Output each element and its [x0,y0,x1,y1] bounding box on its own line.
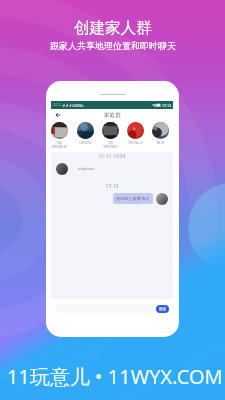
button[interactable]: 130 [98,122,122,149]
button[interactable]: 发送 [156,305,169,313]
staticText: 185 u7a [79,141,91,145]
button[interactable]: 130 Plus 3 [123,122,147,145]
staticText: 240B/s [72,103,84,108]
button[interactable]: 13# [47,122,71,149]
staticText: 创建家人群 [74,18,152,38]
staticText: 17:13 [51,183,173,190]
staticText: 跟家人共享地理位置和即时聊天 [50,40,176,51]
staticText: 36% 17:13 [154,103,172,108]
button[interactable]: Back [51,109,65,121]
button[interactable]: 185 u7a [73,122,97,145]
staticText: 11-11 15:24 [51,153,173,160]
staticText: 98 X1 [156,141,165,145]
staticText: 家庭群 [104,112,121,119]
button[interactable]: 98 X1 [148,122,172,145]
staticText: 11玩意儿 • 11WYX.COM [7,363,223,390]
staticText: 发送 [159,307,166,311]
staticText: 130 Plus 3 [127,141,143,145]
button[interactable]: Avatar [156,193,168,205]
staticText: 13# [56,141,62,145]
staticText: MIN AL30 [52,145,67,149]
staticText: 通知晚上聚餐地点 [116,196,150,201]
staticText: dajiahao [78,166,95,172]
staticText: SM1000H [103,145,118,149]
button[interactable]: Avatar [56,163,68,175]
staticText: 130 [107,141,113,145]
button[interactable]: 通知晚上聚餐地点 [113,193,153,204]
